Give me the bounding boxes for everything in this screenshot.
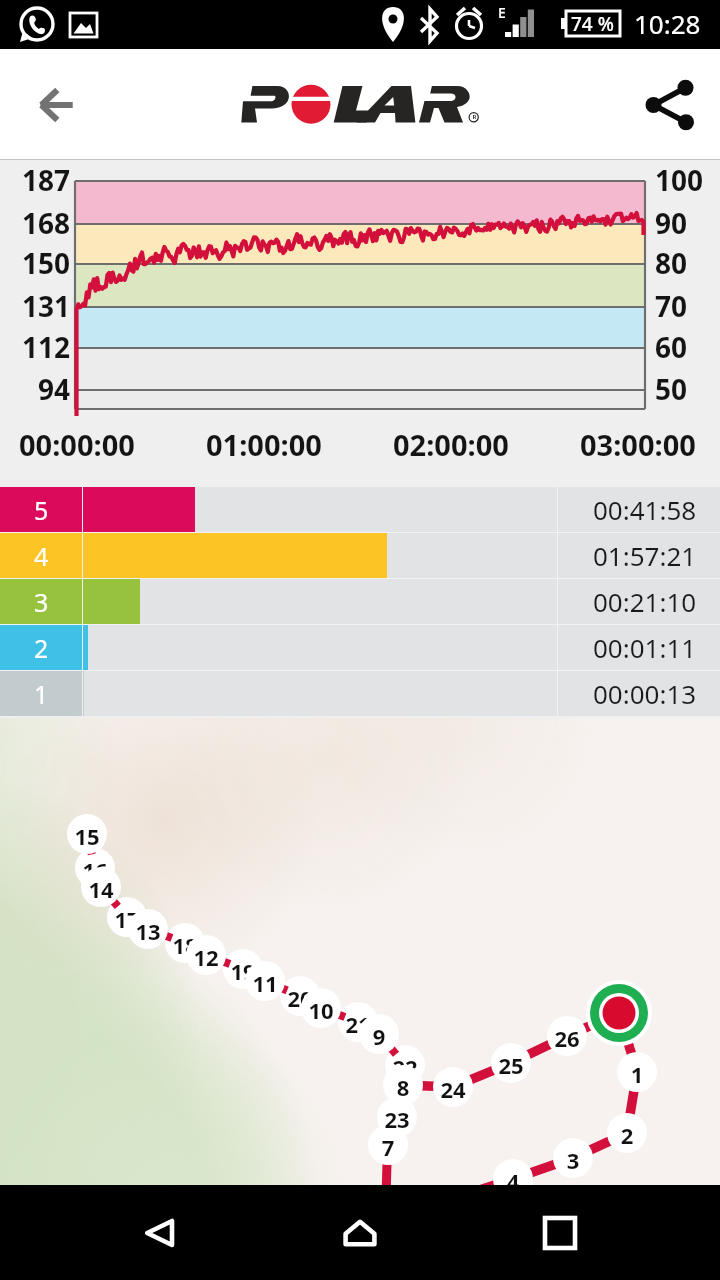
staticText: 131	[0, 287, 70, 325]
staticText: 00:41:58	[593, 492, 697, 527]
button[interactable]: 4	[0, 533, 720, 578]
staticText: 150	[0, 244, 70, 282]
staticText: 15	[67, 821, 107, 851]
staticText: 00:00:00	[19, 425, 135, 464]
staticText: 13	[128, 916, 168, 946]
staticText: 70	[655, 287, 688, 325]
button[interactable]: Back	[20, 69, 92, 141]
staticText: 7	[368, 1132, 408, 1162]
staticText: 4	[493, 1166, 533, 1196]
staticText: 23	[377, 1104, 417, 1134]
staticText: 5	[34, 493, 49, 527]
staticText: 74 %	[571, 11, 614, 37]
button[interactable]: 3	[0, 579, 720, 624]
staticText: 8	[383, 1072, 423, 1102]
staticText: 20	[280, 983, 320, 1013]
staticText: 24	[433, 1074, 473, 1104]
button[interactable]: Share	[634, 69, 706, 141]
staticText: 10:28	[634, 6, 701, 41]
staticText: 1	[617, 1059, 657, 1089]
staticText: 19	[223, 956, 263, 986]
button[interactable]: 5	[0, 487, 720, 532]
staticText: 2	[34, 631, 49, 665]
staticText: 17	[107, 904, 147, 934]
staticText: 00:00:13	[593, 676, 697, 711]
staticText: 50	[655, 370, 688, 408]
staticText: 01:00:00	[206, 425, 322, 464]
staticText: 80	[655, 244, 688, 282]
staticText: 21	[338, 1009, 378, 1039]
staticText: 26	[547, 1023, 587, 1053]
staticText: 112	[0, 328, 70, 366]
staticText: 01:57:21	[593, 538, 697, 573]
staticText: 90	[655, 204, 688, 242]
button[interactable]: 2	[0, 625, 720, 670]
staticText: 12	[186, 942, 226, 972]
staticText: 25	[491, 1050, 531, 1080]
staticText: 60	[655, 328, 688, 366]
staticText: 14	[81, 874, 121, 904]
staticText: 4	[34, 539, 49, 573]
staticText: 18	[165, 930, 205, 960]
button[interactable]: Home	[325, 1198, 395, 1268]
staticText: 16	[75, 855, 115, 885]
staticText: 2	[607, 1120, 647, 1150]
staticText: 9	[359, 1021, 399, 1051]
staticText: 11	[245, 968, 285, 998]
staticText: 3	[34, 585, 49, 619]
staticText: 02:00:00	[393, 425, 509, 464]
staticText: 00:21:10	[593, 584, 697, 619]
staticText: 3	[553, 1145, 593, 1175]
staticText: 94	[0, 370, 70, 408]
button[interactable]: Recent apps	[525, 1198, 595, 1268]
staticText: 00:01:11	[593, 630, 697, 665]
staticText: 187	[0, 161, 70, 199]
staticText: 100	[655, 161, 704, 199]
button[interactable]: Back	[125, 1198, 195, 1268]
staticText: 03:00:00	[580, 425, 696, 464]
staticText: 10	[301, 995, 341, 1025]
staticText: 22	[385, 1052, 425, 1082]
staticText: 1	[34, 677, 49, 711]
button[interactable]: 1	[0, 671, 720, 716]
staticText: 168	[0, 204, 70, 242]
staticText: R	[472, 113, 477, 121]
staticText: E	[498, 3, 506, 22]
